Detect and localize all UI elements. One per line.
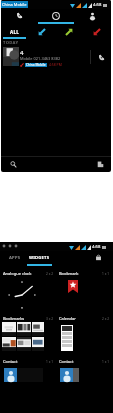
staticText: 4 (20, 49, 24, 57)
staticText: 4:58 (92, 244, 101, 250)
button[interactable]: Dialpad (92, 157, 108, 172)
staticText: 2 x 2 (46, 272, 53, 276)
staticText: Mobile 021-3463 8382 (20, 56, 61, 61)
staticText: 4:58 PM (49, 62, 62, 67)
button[interactable]: Missed calls (83, 27, 111, 36)
button[interactable]: Contact (3, 358, 53, 365)
staticText: 2 x 2 (102, 317, 109, 321)
button[interactable]: APPS (3, 252, 26, 263)
button[interactable]: Bookmarks (3, 315, 53, 322)
button[interactable]: Bookmark (59, 270, 109, 277)
button[interactable]: Analogue clock (3, 270, 53, 277)
button[interactable]: 4 (1, 47, 111, 67)
staticText: China Mobile (26, 63, 46, 67)
button[interactable]: Call (91, 47, 111, 67)
button[interactable]: Outgoing calls (55, 27, 83, 36)
staticText: Bookmark (59, 271, 102, 276)
button[interactable]: Dialer (1, 9, 37, 22)
button[interactable]: Contacts (74, 9, 111, 22)
staticText: TODAY (3, 40, 19, 46)
staticText: 1 x 1 (102, 272, 109, 276)
staticText: ALL (10, 29, 20, 35)
staticText: Contact (3, 359, 46, 364)
staticText: China Mobile (2, 2, 27, 7)
button[interactable]: ALL (1, 27, 28, 36)
staticText: WIDGETS (29, 255, 50, 261)
staticText: 1 x 1 (102, 360, 109, 364)
button[interactable]: WIDGETS (27, 252, 52, 263)
button[interactable]: Calendar (59, 315, 109, 322)
button[interactable]: Incoming calls (28, 27, 55, 36)
button[interactable]: Call log (37, 9, 74, 22)
staticText: APPS (9, 255, 21, 261)
button[interactable]: Contact (59, 358, 109, 365)
button[interactable]: Search (5, 157, 21, 172)
staticText: 3 x 2 (46, 317, 53, 321)
staticText: Contact (59, 359, 102, 364)
staticText: 1 x 1 (46, 360, 53, 364)
staticText: Bookmarks (3, 316, 46, 321)
button[interactable]: Shop (92, 252, 104, 263)
staticText: Analogue clock (3, 271, 46, 276)
staticText: Calendar (59, 316, 102, 321)
staticText: 4:58 (93, 2, 102, 8)
